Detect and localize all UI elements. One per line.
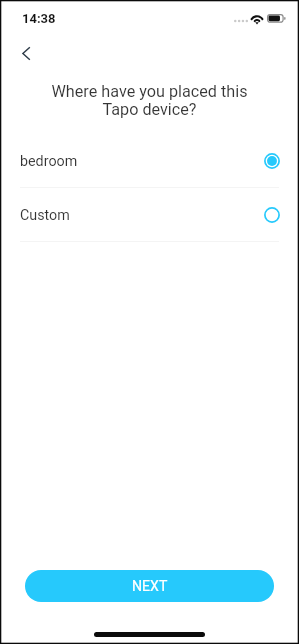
staticText: Custom (20, 207, 70, 224)
button[interactable]: NEXT (25, 570, 274, 602)
button[interactable]: Custom (0, 188, 299, 241)
staticText: bedroom (20, 153, 78, 170)
staticText: NEXT (132, 578, 168, 595)
button[interactable]: bedroom (0, 134, 299, 187)
button[interactable]: Back (10, 37, 42, 69)
staticText: Where have you placed this Tapo device? (38, 82, 261, 119)
staticText: 14:38 (22, 11, 56, 26)
